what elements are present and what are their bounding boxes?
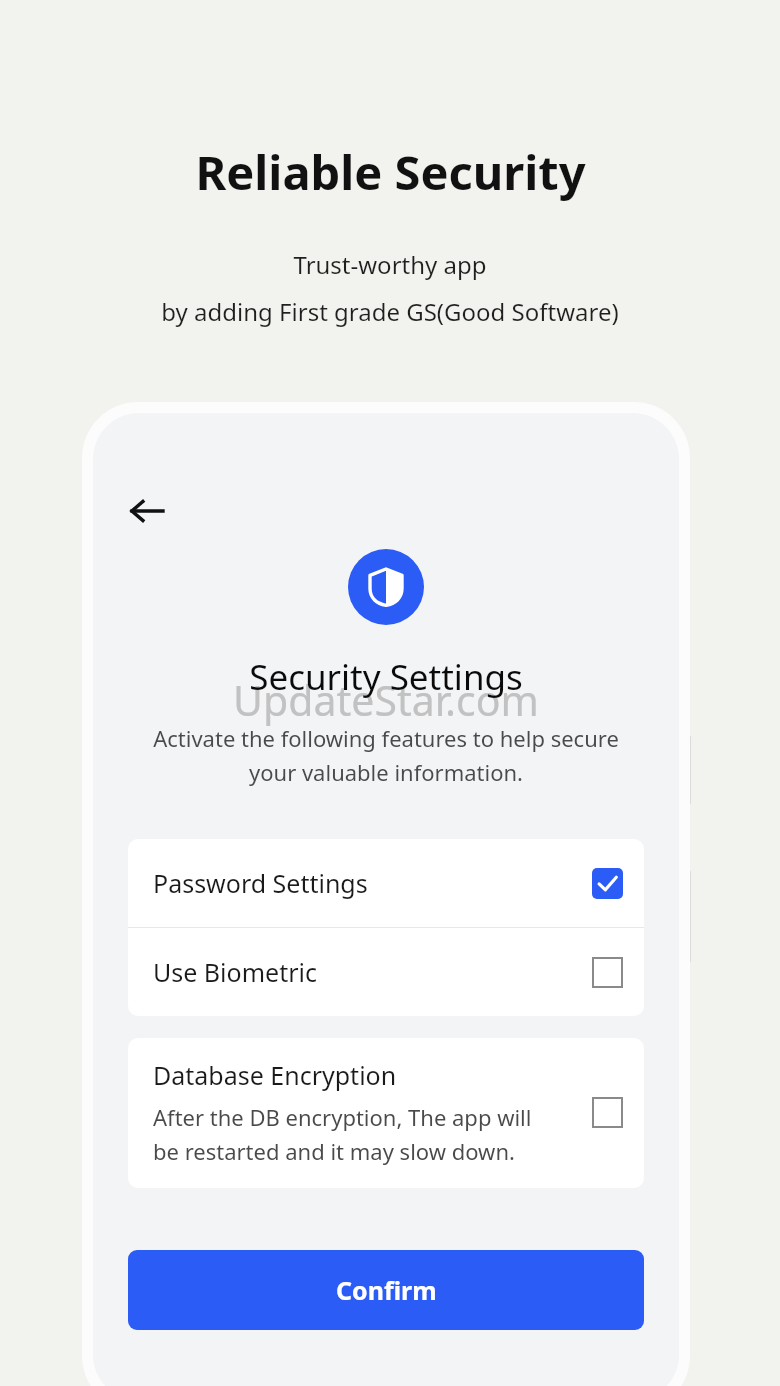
staticText: Security Settings [249, 653, 523, 701]
button[interactable]: Password Settings [128, 839, 644, 927]
staticText: Activate the following features to help … [111, 723, 661, 787]
staticText: Trust-worthy app [293, 248, 487, 281]
button[interactable]: Confirm [128, 1250, 644, 1330]
button[interactable]: Use Biometric [128, 928, 644, 1016]
staticText: Confirm [336, 1273, 437, 1307]
staticText: by adding First grade GS(Good Software) [161, 295, 619, 328]
staticText: Password Settings [153, 866, 592, 900]
button[interactable]: Database Encryption [128, 1038, 644, 1188]
staticText: Database Encryption [153, 1058, 397, 1092]
staticText: Use Biometric [153, 955, 592, 989]
staticText: UpdateStar.com [233, 672, 539, 728]
button[interactable]: Back [123, 487, 171, 535]
staticText: After the DB encryption, The app will be… [153, 1102, 532, 1166]
staticText: Reliable Security [195, 140, 586, 204]
